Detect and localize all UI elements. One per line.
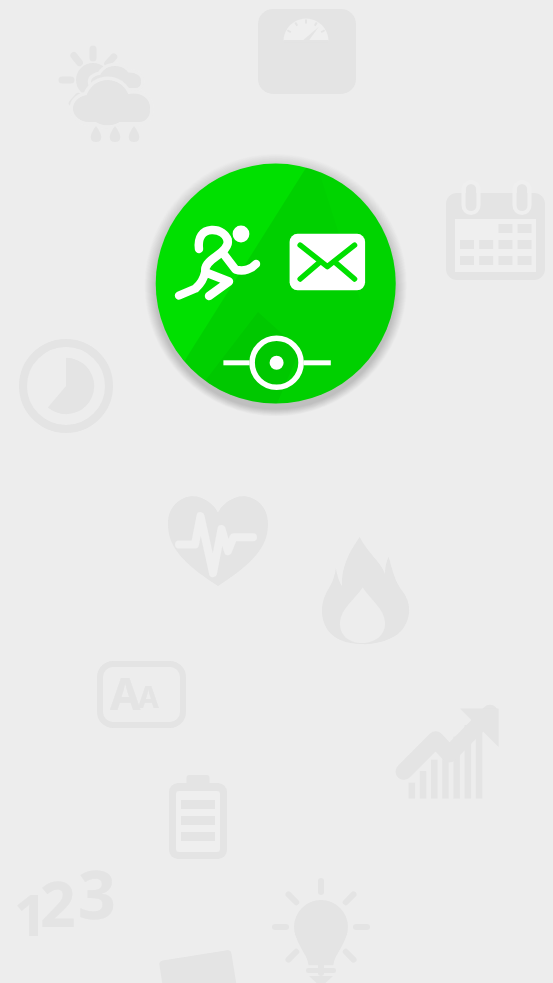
button[interactable]: App logo [150,158,402,410]
staticText: 3 [78,848,116,938]
staticText: 1 [14,874,48,953]
staticText: A [138,676,159,717]
staticText: 2 [40,861,76,945]
staticText: A [110,663,141,723]
